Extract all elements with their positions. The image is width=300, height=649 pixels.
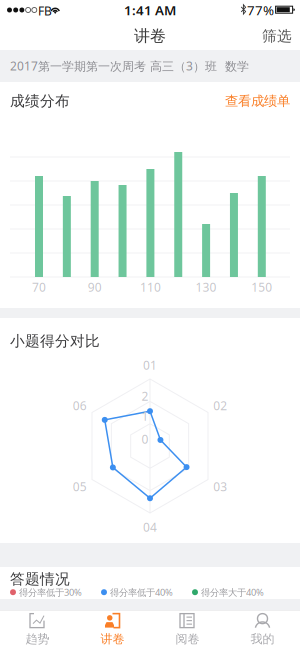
button[interactable]: 阅卷 xyxy=(150,610,225,649)
staticText: 答题情况 xyxy=(10,570,70,588)
staticText: 90 xyxy=(88,279,102,295)
staticText: 04 xyxy=(143,519,157,535)
staticText: 1:41 AM xyxy=(124,1,176,19)
staticText: FB xyxy=(38,3,52,19)
button[interactable]: 查看成绩单 xyxy=(180,94,290,108)
button[interactable]: 讲卷 xyxy=(75,610,150,649)
staticText: 得分率大于40% xyxy=(201,586,264,598)
staticText: 1 xyxy=(141,408,148,424)
staticText: 成绩分布 xyxy=(10,92,70,110)
staticText: 03 xyxy=(213,478,227,494)
staticText: 2 xyxy=(141,388,148,404)
staticText: 筛选 xyxy=(262,27,292,45)
staticText: 01 xyxy=(143,357,157,373)
staticText: 小题得分对比 xyxy=(10,332,100,350)
staticText: 05 xyxy=(73,478,87,494)
button[interactable]: 趋势 xyxy=(0,610,75,649)
staticText: 0 xyxy=(141,431,148,447)
staticText: 02 xyxy=(213,397,227,413)
staticText: 得分率低于40% xyxy=(110,586,173,598)
staticText: 查看成绩单 xyxy=(225,93,290,109)
staticText: 得分率低于30% xyxy=(19,586,82,598)
staticText: 130 xyxy=(196,279,217,295)
staticText: 2017第一学期第一次周考 高三（3）班 数学 xyxy=(10,58,249,74)
staticText: 77% xyxy=(247,1,274,19)
button[interactable]: 我的 xyxy=(225,610,300,649)
staticText: 讲卷 xyxy=(100,632,124,646)
staticText: 阅卷 xyxy=(175,632,199,646)
staticText: 150 xyxy=(251,279,272,295)
staticText: 我的 xyxy=(250,632,274,646)
staticText: 趋势 xyxy=(25,632,49,646)
staticText: 06 xyxy=(73,397,87,413)
staticText: 讲卷 xyxy=(134,26,166,46)
staticText: 110 xyxy=(140,279,161,295)
staticText: 70 xyxy=(32,279,46,295)
button[interactable]: 筛选 xyxy=(240,27,292,45)
